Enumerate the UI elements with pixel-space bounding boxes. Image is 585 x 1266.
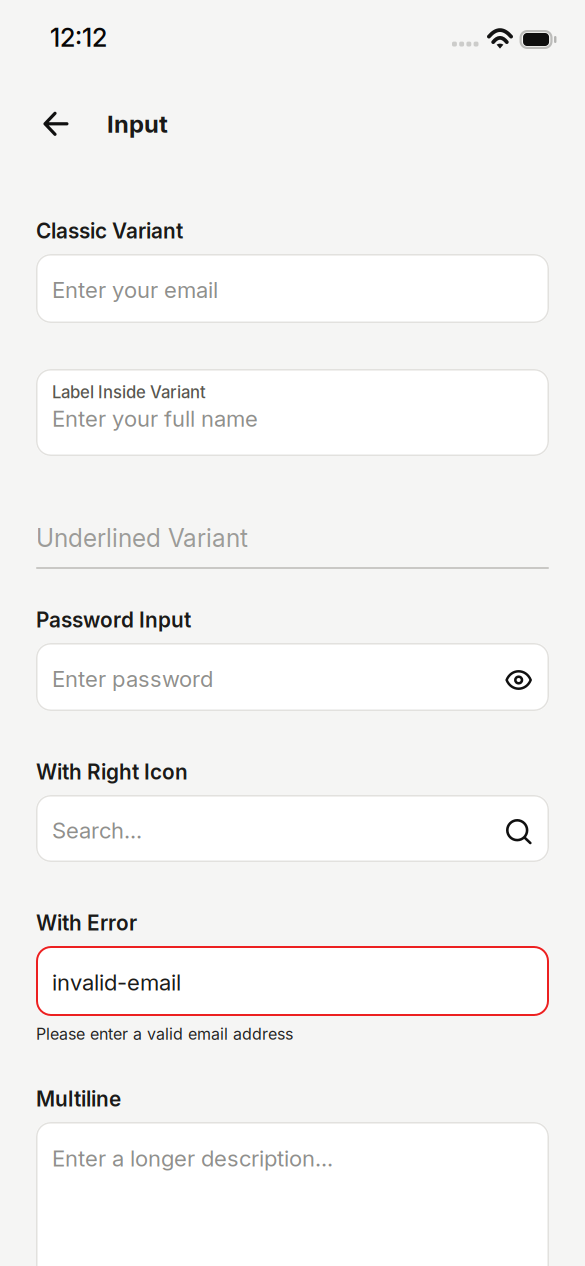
button[interactable]: invalid-email bbox=[36, 946, 549, 1016]
staticText: Enter your email bbox=[52, 277, 218, 303]
staticText: 12:12 bbox=[50, 22, 107, 53]
staticText: Search... bbox=[52, 817, 142, 844]
button[interactable]: Search... bbox=[36, 795, 549, 862]
staticText: Multiline bbox=[36, 1086, 121, 1112]
staticText: With Right Icon bbox=[36, 759, 188, 785]
button[interactable]: Input bbox=[107, 102, 168, 146]
staticText: invalid-email bbox=[52, 969, 181, 996]
button[interactable]: Enter your email bbox=[36, 254, 549, 323]
staticText: Enter password bbox=[52, 666, 213, 692]
staticText: Label Inside Variant bbox=[52, 382, 206, 402]
staticText: Enter a longer description... bbox=[52, 1145, 333, 1172]
staticText: Enter your full name bbox=[52, 405, 258, 432]
staticText: Please enter a valid email address bbox=[36, 1024, 293, 1044]
button[interactable]: Enter password bbox=[36, 643, 549, 711]
button[interactable]: Enter a longer description... bbox=[36, 1122, 549, 1266]
button[interactable]: Label Inside Variant bbox=[36, 369, 549, 456]
staticText: Underlined Variant bbox=[36, 523, 248, 553]
staticText: Password Input bbox=[36, 607, 191, 633]
staticText: Input bbox=[107, 109, 168, 138]
button[interactable]: Back bbox=[36, 102, 76, 146]
staticText: With Error bbox=[36, 910, 137, 936]
button[interactable]: Underlined Variant bbox=[36, 520, 549, 569]
staticText: Classic Variant bbox=[36, 218, 183, 244]
